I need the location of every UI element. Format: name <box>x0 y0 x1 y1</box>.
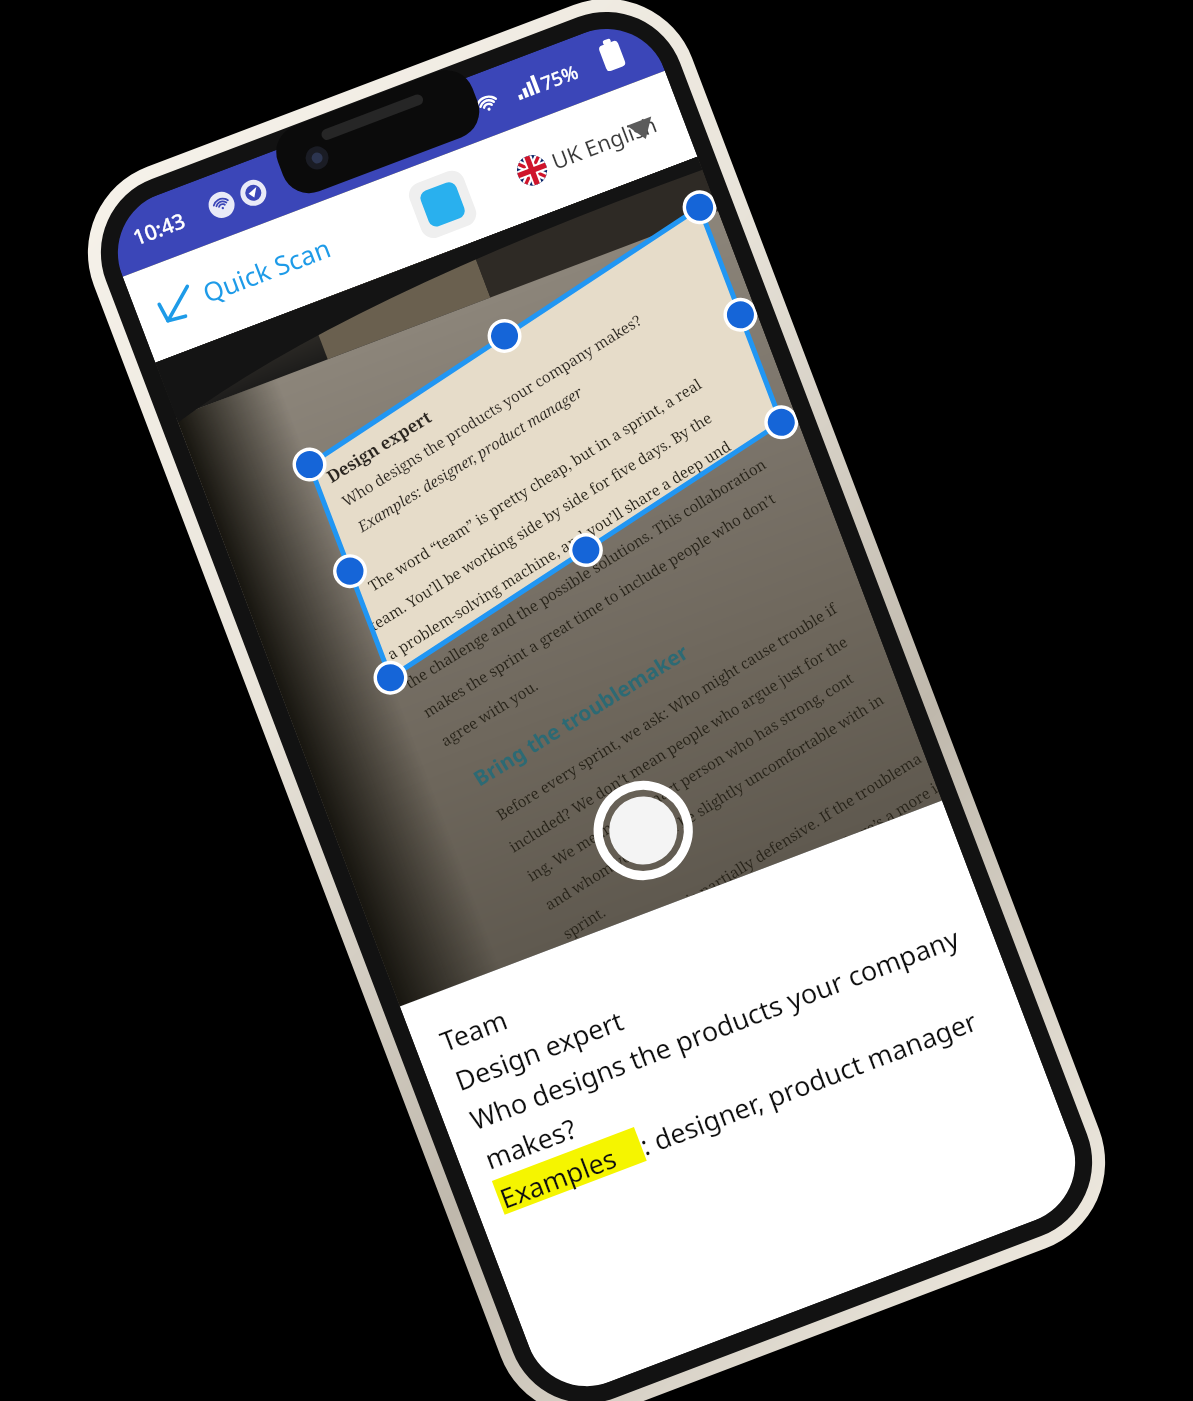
button[interactable]: Quick Scan camera screen <box>0 0 1193 1401</box>
